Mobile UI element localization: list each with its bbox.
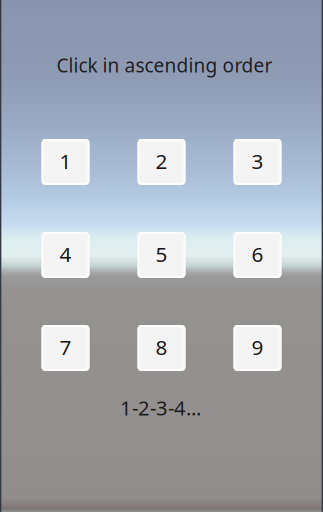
staticText: Click in ascending order xyxy=(56,52,272,78)
staticText: 8 xyxy=(155,333,167,361)
staticText: 7 xyxy=(59,333,71,361)
staticText: 6 xyxy=(251,240,263,268)
staticText: 2 xyxy=(155,147,167,175)
button[interactable]: 4 xyxy=(41,232,89,278)
staticText: 5 xyxy=(155,240,167,268)
staticText: 1 xyxy=(59,147,71,175)
button[interactable]: 6 xyxy=(233,232,281,278)
staticText: 4 xyxy=(59,240,71,268)
button[interactable]: 7 xyxy=(41,325,89,371)
button[interactable]: 3 xyxy=(233,139,281,185)
staticText: 9 xyxy=(251,333,263,361)
button[interactable]: 9 xyxy=(233,325,281,371)
staticText: 1-2-3-4... xyxy=(120,394,201,421)
button[interactable]: 8 xyxy=(137,325,185,371)
staticText: 3 xyxy=(251,147,263,175)
button[interactable]: 1 xyxy=(41,139,89,185)
button[interactable]: 2 xyxy=(137,139,185,185)
button[interactable]: 5 xyxy=(137,232,185,278)
